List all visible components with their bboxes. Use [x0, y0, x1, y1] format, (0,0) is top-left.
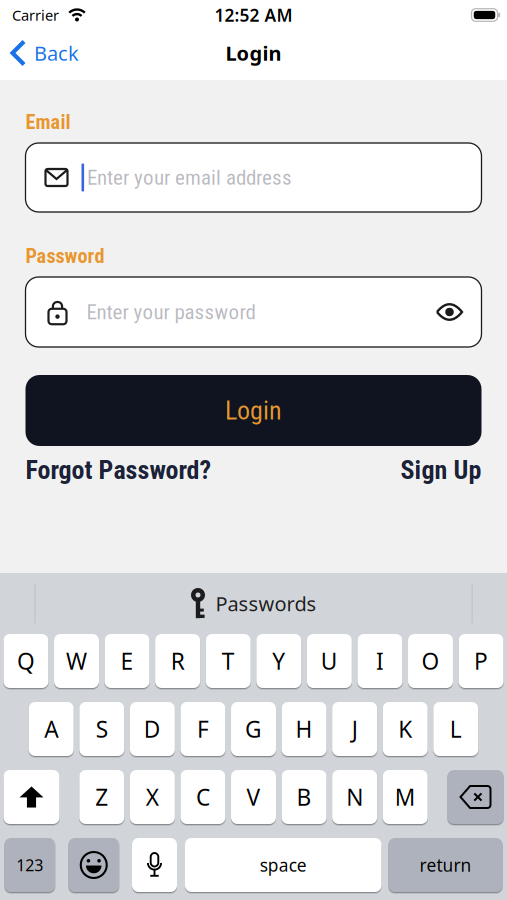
button[interactable]: F [180, 702, 225, 756]
staticText: X [146, 782, 159, 812]
staticText: Email [25, 110, 70, 134]
button[interactable]: return [388, 838, 502, 892]
button[interactable]: Delete [447, 770, 503, 824]
staticText: M [395, 782, 416, 812]
staticText: Back [34, 40, 79, 66]
staticText: Login [225, 40, 281, 66]
staticText: Q [17, 646, 35, 676]
button[interactable]: U [307, 634, 352, 688]
staticText: Carrier [12, 5, 59, 25]
staticText: R [171, 646, 185, 676]
staticText: Enter your password [86, 300, 255, 324]
staticText: L [450, 714, 462, 744]
button[interactable]: 123 [4, 838, 55, 892]
staticText: Enter your email address [87, 165, 292, 190]
button[interactable]: P [459, 634, 504, 688]
staticText: Password [25, 244, 104, 268]
staticText: 12:52 AM [214, 3, 292, 26]
staticText: return [419, 853, 471, 876]
staticText: Passwords [215, 590, 316, 617]
staticText: Forgot Password? [25, 455, 211, 485]
staticText: W [66, 646, 87, 676]
staticText: Login [225, 395, 282, 426]
staticText: I [376, 646, 384, 676]
button[interactable]: Sign Up [400, 455, 481, 485]
button[interactable]: Login [25, 375, 481, 446]
staticText: H [296, 714, 313, 744]
staticText: T [222, 646, 235, 676]
button[interactable]: S [79, 702, 124, 756]
button[interactable]: H [282, 702, 327, 756]
button[interactable]: Z [79, 770, 124, 824]
button[interactable]: Forgot Password? [25, 455, 211, 485]
button[interactable]: Dictate [132, 838, 177, 892]
button[interactable]: K [383, 702, 428, 756]
staticText: A [44, 714, 58, 744]
staticText: B [297, 782, 312, 812]
button[interactable]: Passwords [190, 588, 316, 619]
button[interactable]: G [231, 702, 276, 756]
staticText: C [196, 782, 210, 812]
staticText: space [260, 853, 307, 876]
button[interactable]: W [54, 634, 99, 688]
staticText: Sign Up [400, 455, 481, 485]
staticText: S [96, 714, 108, 744]
staticText: D [144, 714, 161, 744]
button[interactable]: B [282, 770, 327, 824]
button[interactable]: M [383, 770, 428, 824]
button[interactable]: X [130, 770, 175, 824]
staticText: 123 [16, 854, 43, 876]
staticText: E [121, 646, 134, 676]
button[interactable]: Shift [3, 770, 59, 824]
button[interactable]: O [408, 634, 453, 688]
staticText: P [474, 646, 488, 676]
staticText: U [321, 646, 338, 676]
staticText: F [197, 714, 209, 744]
staticText: G [245, 714, 262, 744]
button[interactable]: C [180, 770, 225, 824]
button[interactable]: V [231, 770, 276, 824]
staticText: Y [272, 646, 285, 676]
button[interactable]: Show password [434, 297, 464, 327]
button[interactable]: Y [256, 634, 301, 688]
button[interactable]: I [357, 634, 402, 688]
staticText: V [246, 782, 260, 812]
button[interactable]: space [185, 838, 381, 892]
button[interactable]: R [155, 634, 200, 688]
button[interactable]: J [332, 702, 377, 756]
button[interactable]: Back [11, 40, 79, 66]
button[interactable]: Emoji [68, 838, 119, 892]
button[interactable]: A [29, 702, 74, 756]
button[interactable]: T [206, 634, 251, 688]
staticText: O [421, 646, 439, 676]
button[interactable]: E [105, 634, 150, 688]
staticText: N [346, 782, 363, 812]
button[interactable]: D [130, 702, 175, 756]
staticText: J [352, 714, 358, 744]
button[interactable]: L [433, 702, 478, 756]
button[interactable]: Q [3, 634, 48, 688]
staticText: Z [95, 782, 108, 812]
staticText: K [398, 714, 412, 744]
button[interactable]: N [332, 770, 377, 824]
